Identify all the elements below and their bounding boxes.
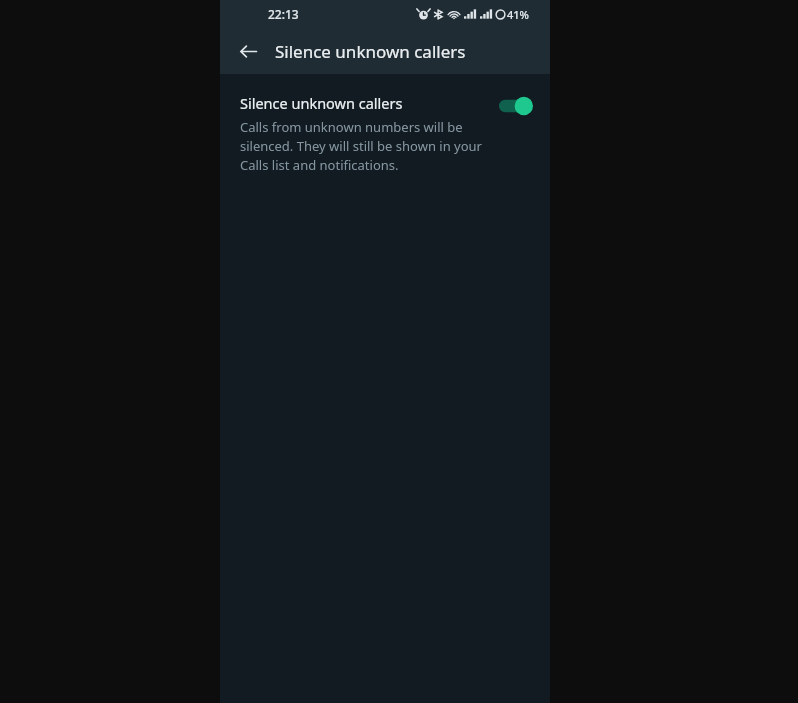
staticText: Silence unknown callers	[240, 93, 403, 113]
button[interactable]: Back	[229, 32, 267, 70]
staticText: Silence unknown callers	[275, 40, 466, 63]
button[interactable]: Silence unknown callers toggle	[499, 96, 533, 116]
staticText: Calls from unknown numbers will be silen…	[240, 118, 487, 174]
button[interactable]: Silence unknown callers	[220, 74, 550, 192]
staticText: 22:13	[268, 6, 299, 22]
staticText: 41%	[507, 7, 529, 22]
